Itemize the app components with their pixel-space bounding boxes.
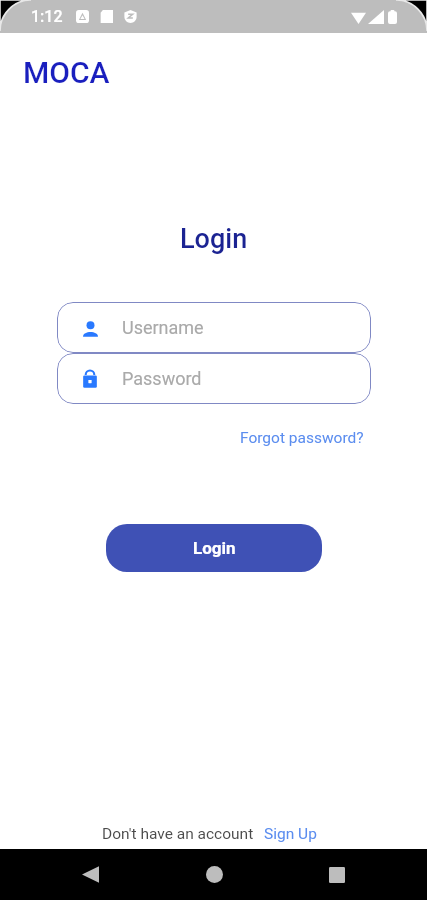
button[interactable]: Home	[187, 849, 241, 900]
staticText: Password	[122, 368, 202, 389]
staticText: Don't have an account	[102, 825, 254, 843]
staticText: MOCA	[23, 55, 110, 90]
staticText: Login	[180, 223, 248, 255]
button[interactable]: Back	[63, 849, 117, 900]
button[interactable]: Sign Up	[264, 825, 317, 843]
button[interactable]: Username	[57, 302, 371, 353]
staticText: Login	[193, 538, 236, 558]
button[interactable]: Forgot password?	[240, 429, 364, 447]
button[interactable]: Login	[106, 524, 322, 572]
staticText: Username	[122, 317, 204, 338]
staticText: 1:12	[31, 7, 63, 26]
button[interactable]: Password	[57, 353, 371, 404]
button[interactable]: Recents	[310, 849, 364, 900]
